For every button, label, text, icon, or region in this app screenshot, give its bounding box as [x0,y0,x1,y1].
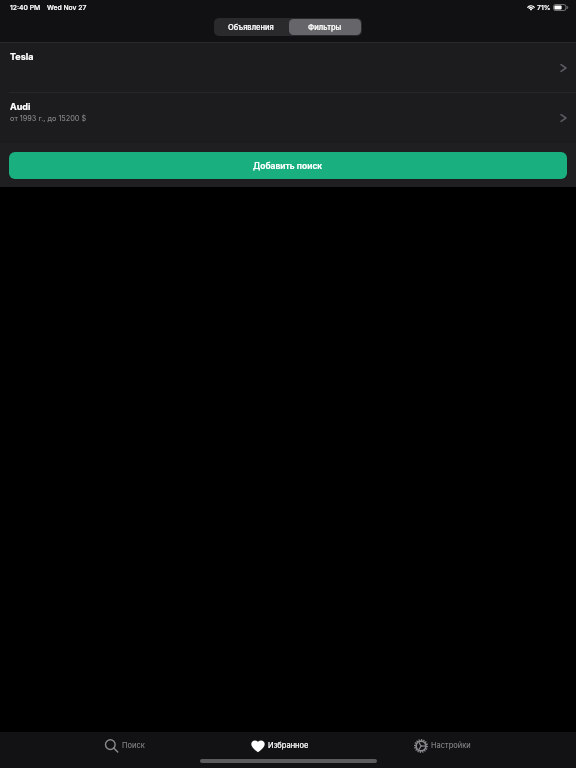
staticText: Фильтры [308,23,342,32]
staticText: Tesla [10,51,34,62]
button[interactable]: Tesla [0,43,576,92]
button[interactable]: Settings [414,735,471,756]
staticText: Поиск [122,741,145,750]
staticText: Добавить поиск [253,161,323,171]
button[interactable]: Фильтры [289,19,361,35]
staticText: 12:40 PM [10,3,41,11]
button[interactable]: Объявления [215,19,287,35]
button[interactable]: Search [105,735,145,756]
button[interactable]: Favorites [251,735,309,756]
button[interactable]: Добавить поиск [9,152,567,179]
staticText: Объявления [228,23,274,32]
button[interactable]: Audi [0,93,576,143]
staticText: Audi [10,101,31,112]
staticText: от 1993 г., до 15200 $ [10,114,87,123]
staticText: Избранное [268,741,309,750]
staticText: 71% [537,3,551,11]
staticText: Настройки [431,741,471,750]
staticText: Wed Nov 27 [47,3,87,11]
